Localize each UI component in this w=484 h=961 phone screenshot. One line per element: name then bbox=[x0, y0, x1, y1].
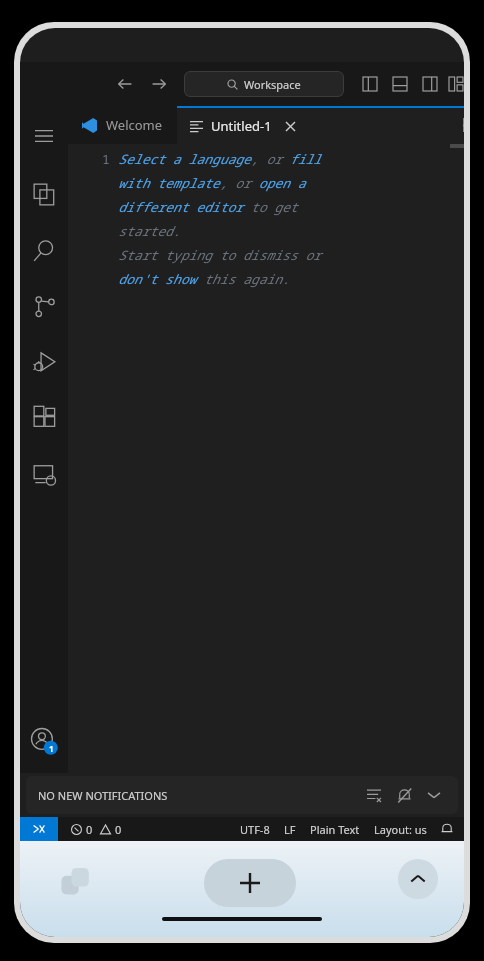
button[interactable]: Back bbox=[112, 71, 138, 97]
staticText: UTF-8 bbox=[240, 822, 270, 837]
button[interactable]: Add bbox=[204, 859, 296, 907]
button[interactable]: Notifications bbox=[434, 817, 460, 841]
button[interactable]: Menu bbox=[20, 112, 68, 160]
staticText: don't show this again. bbox=[118, 270, 290, 288]
staticText: different editor to get bbox=[118, 198, 298, 216]
button[interactable]: Open a remote window bbox=[20, 817, 58, 841]
staticText: Layout: us bbox=[374, 822, 427, 837]
staticText: 1 bbox=[102, 150, 110, 168]
button[interactable]: NO NEW NOTIFICATIONS bbox=[26, 776, 458, 814]
staticText: NO NEW NOTIFICATIONS bbox=[38, 788, 168, 803]
button[interactable]: Extensions bbox=[20, 390, 68, 446]
button[interactable]: Workspace bbox=[184, 71, 344, 97]
button[interactable]: Remote Explorer bbox=[20, 446, 68, 502]
staticText: Untitled-1 bbox=[211, 117, 272, 135]
button[interactable]: Hide notifications bbox=[422, 783, 446, 807]
staticText: Welcome bbox=[106, 116, 163, 134]
button[interactable]: Toggle panel bbox=[388, 72, 412, 96]
button[interactable]: Welcome bbox=[82, 106, 163, 144]
button[interactable]: Close bbox=[282, 118, 299, 135]
staticText: started. bbox=[118, 222, 181, 240]
button[interactable]: Search bbox=[20, 222, 68, 278]
button[interactable]: Untitled-1 bbox=[177, 106, 464, 144]
button[interactable]: Forward bbox=[146, 71, 172, 97]
staticText: 1 bbox=[49, 743, 54, 754]
button[interactable]: Toggle do not disturb bbox=[392, 783, 416, 807]
button[interactable]: UTF-8 bbox=[233, 822, 277, 837]
staticText: LF bbox=[284, 822, 296, 837]
staticText: 0 bbox=[115, 822, 122, 837]
staticText: Start typing to dismiss or bbox=[118, 246, 321, 264]
staticText: with template, or open a bbox=[118, 174, 306, 192]
button[interactable]: Toggle primary side bar bbox=[358, 72, 382, 96]
button[interactable]: Expand bbox=[398, 859, 438, 899]
button[interactable]: Customize layout bbox=[448, 72, 464, 96]
button[interactable]: Run and Debug bbox=[20, 334, 68, 390]
button[interactable]: Source Control bbox=[20, 278, 68, 334]
staticText: Plain Text bbox=[310, 822, 360, 837]
button[interactable]: Recent apps bbox=[54, 859, 102, 907]
button[interactable]: Accounts bbox=[20, 717, 68, 765]
button[interactable]: Clear all notifications bbox=[362, 783, 386, 807]
button[interactable]: Toggle secondary side bar bbox=[418, 72, 442, 96]
staticText: Workspace bbox=[244, 77, 301, 92]
staticText: Select a language, or fill bbox=[118, 150, 321, 168]
button[interactable]: Layout: us bbox=[367, 822, 434, 837]
staticText: 0 bbox=[86, 822, 93, 837]
button[interactable]: Plain Text bbox=[303, 822, 367, 837]
button[interactable]: Explorer bbox=[20, 166, 68, 222]
button[interactable]: 0 bbox=[68, 822, 125, 837]
button[interactable]: LF bbox=[277, 822, 303, 837]
